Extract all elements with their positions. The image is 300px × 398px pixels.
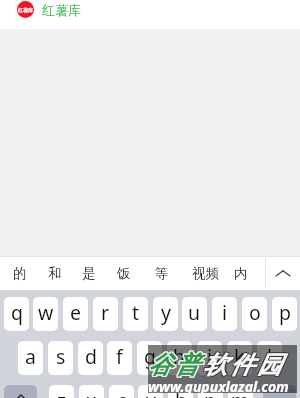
button[interactable]: 饭 xyxy=(107,256,141,290)
button[interactable]: w xyxy=(33,297,58,331)
staticText: o xyxy=(249,299,261,326)
staticText: p xyxy=(279,299,291,326)
staticText: y xyxy=(161,299,171,326)
button[interactable]: z xyxy=(49,385,74,398)
staticText: 软件园 xyxy=(204,349,286,379)
button[interactable]: l xyxy=(257,341,282,375)
button[interactable]: t xyxy=(123,297,148,331)
button[interactable]: Delete xyxy=(263,385,296,398)
staticText: u xyxy=(188,299,201,326)
staticText: 谷普 xyxy=(147,351,202,381)
staticText: h xyxy=(173,343,186,370)
staticText: x xyxy=(86,387,97,398)
staticText: v xyxy=(146,387,156,398)
staticText: 的 xyxy=(13,265,27,282)
staticText: 软件园 xyxy=(202,351,284,381)
button[interactable]: r xyxy=(93,297,118,331)
staticText: 谷普 xyxy=(148,349,203,379)
staticText: a xyxy=(25,343,36,370)
button[interactable]: 等 xyxy=(145,256,179,290)
staticText: 视频 xyxy=(192,265,219,282)
staticText: j xyxy=(207,343,213,370)
staticText: e xyxy=(70,299,81,326)
staticText: g xyxy=(144,343,156,370)
staticText: 等 xyxy=(155,265,169,282)
button[interactable]: 内 xyxy=(224,256,258,290)
button[interactable]: x xyxy=(79,385,104,398)
staticText: q xyxy=(11,299,23,326)
staticText: 谷普 xyxy=(149,350,204,380)
button[interactable]: 的 xyxy=(3,256,37,290)
staticText: 软件园 xyxy=(202,350,284,380)
button[interactable]: n xyxy=(198,385,223,398)
button[interactable]: s xyxy=(48,341,73,375)
staticText: b xyxy=(175,387,187,398)
staticText: s xyxy=(56,343,66,370)
staticText: 谷普 xyxy=(148,350,203,380)
button[interactable]: q xyxy=(4,297,29,331)
staticText: w xyxy=(38,299,54,326)
button[interactable]: e xyxy=(63,297,88,331)
button[interactable]: i xyxy=(212,297,237,331)
button[interactable]: k xyxy=(227,341,252,375)
staticText: k xyxy=(234,343,245,370)
staticText: m xyxy=(231,387,250,398)
staticText: 软件园 xyxy=(203,349,285,379)
button[interactable]: v xyxy=(138,385,163,398)
staticText: d xyxy=(85,343,97,370)
staticText: 谷普 xyxy=(149,349,204,379)
staticText: l xyxy=(267,343,273,370)
button[interactable]: 是 xyxy=(72,256,106,290)
button[interactable]: Shift xyxy=(4,385,37,398)
staticText: 软件园 xyxy=(204,351,286,381)
staticText: n xyxy=(204,387,217,398)
button[interactable]: y xyxy=(153,297,178,331)
button[interactable]: p xyxy=(272,297,297,331)
staticText: 谷普 xyxy=(148,351,203,381)
button[interactable]: Expand candidates xyxy=(266,256,300,290)
button[interactable]: o xyxy=(242,297,267,331)
staticText: 谷普 xyxy=(147,349,202,379)
staticText: 内 xyxy=(234,265,248,282)
button[interactable]: h xyxy=(167,341,192,375)
staticText: c xyxy=(117,387,127,398)
staticText: 饭 xyxy=(117,265,131,282)
button[interactable]: m xyxy=(228,385,253,398)
staticText: 软件园 xyxy=(203,350,285,380)
button[interactable]: u xyxy=(182,297,207,331)
staticText: 软件园 xyxy=(202,349,284,379)
button[interactable]: 视频 xyxy=(181,256,229,290)
staticText: www.gupuxlazal.com xyxy=(148,377,289,396)
staticText: 红薯库 xyxy=(18,7,33,13)
button[interactable]: a xyxy=(18,341,43,375)
staticText: 谷普 xyxy=(147,350,202,380)
staticText: 和 xyxy=(48,265,62,282)
staticText: z xyxy=(57,387,67,398)
staticText: r xyxy=(101,299,110,326)
staticText: 是 xyxy=(82,265,96,282)
staticText: 红薯库 xyxy=(42,2,81,18)
staticText: f xyxy=(116,343,123,370)
button[interactable]: 和 xyxy=(38,256,72,290)
staticText: 软件园 xyxy=(204,350,286,380)
button[interactable]: j xyxy=(197,341,222,375)
staticText: i xyxy=(222,299,228,326)
button[interactable]: d xyxy=(78,341,103,375)
button[interactable]: f xyxy=(107,341,132,375)
button[interactable]: g xyxy=(137,341,162,375)
staticText: 软件园 xyxy=(203,351,285,381)
button[interactable]: c xyxy=(109,385,134,398)
button[interactable]: b xyxy=(168,385,193,398)
staticText: t xyxy=(132,299,140,326)
staticText: 谷普 xyxy=(149,351,204,381)
